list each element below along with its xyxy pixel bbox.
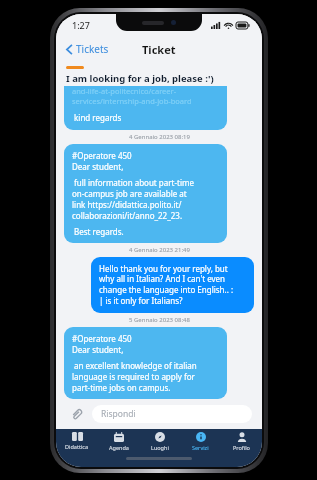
button[interactable]: Profilo [221,429,262,455]
staticText: Tickets [76,42,109,56]
staticText: Ticket [142,42,176,57]
staticText: Dear student, [72,344,124,355]
staticText: 5 Gennaio 2023 08:48 [129,316,190,324]
staticText: Dear student, [72,161,124,172]
staticText: part-time jobs on campus. [72,382,171,393]
staticText: Best regards. [72,226,124,237]
staticText: 4 Gennaio 2023 08:19 [129,133,190,141]
button[interactable]: Servizi [180,429,221,455]
button[interactable]: Didattica [56,429,98,455]
staticText: Rispondi [101,408,136,420]
button[interactable]: #Operatore 450 [64,327,227,399]
staticText: link https://didattica.polito.it/ [72,199,182,210]
button[interactable]: Tickets [62,39,113,59]
button[interactable]: Attach file [66,404,86,424]
staticText: 4 Gennaio 2023 21:49 [129,246,190,254]
staticText: an excellent knowledge of italian [72,360,197,371]
button[interactable]: #Operatore 450 [64,144,227,243]
staticText: Profilo [233,444,250,451]
staticText: #Operatore 450 [72,333,132,344]
staticText: Luoghi [151,444,169,451]
button[interactable]: Rispondi [92,405,252,423]
staticText: Servizi [192,444,209,451]
button[interactable]: Agenda [98,429,139,455]
button[interactable]: Luoghi [139,429,180,455]
staticText: language is required to apply for [72,371,195,382]
staticText: on-campus job are available at [72,188,187,199]
button[interactable]: and-life-at-politecnico/career- services… [64,86,227,130]
staticText: collaborazioni/it/anno_22_23. [72,210,183,221]
staticText: full information about part-time [72,177,194,188]
staticText: I am looking for a job, please :') [66,72,214,85]
staticText: Agenda [109,444,129,451]
staticText: 1:27 [72,19,90,31]
staticText: Hello thank you for your reply, but why … [99,263,234,307]
staticText: kind regards [72,112,122,123]
staticText: #Operatore 450 [72,150,132,161]
staticText: Didattica [65,443,89,450]
button[interactable]: Hello thank you for your reply, but why … [91,257,254,313]
staticText: and-life-at-politecnico/career- services… [72,86,192,106]
